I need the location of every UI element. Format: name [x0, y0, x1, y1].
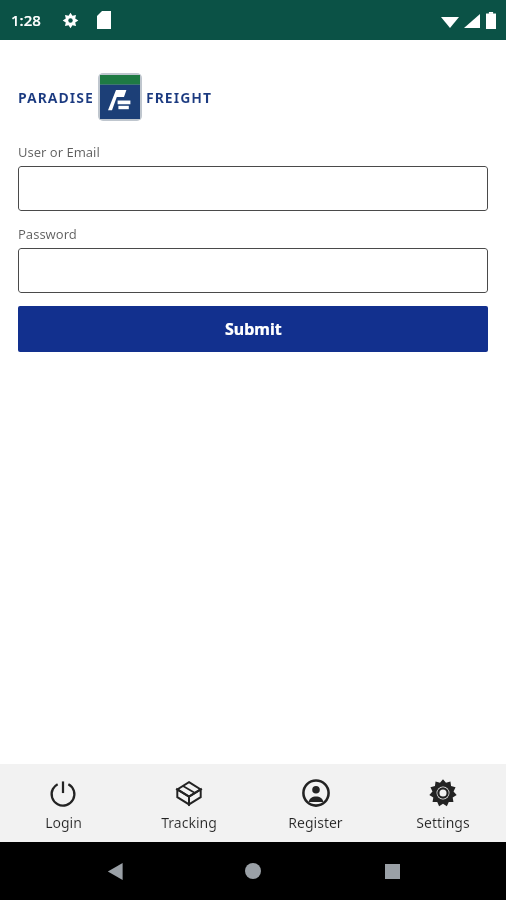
staticText: Settings [416, 813, 470, 832]
button[interactable]: Home [229, 847, 277, 895]
staticText: Register [288, 813, 343, 832]
staticText: 1:28 [11, 10, 41, 30]
staticText: Tracking [161, 813, 217, 832]
button[interactable]: Submit [18, 306, 488, 352]
staticText: Login [45, 813, 82, 832]
staticText: FREIGHT [146, 88, 213, 107]
button[interactable] [18, 248, 488, 293]
staticText: Password [18, 225, 77, 243]
button[interactable]: Settings [379, 764, 506, 842]
staticText: Submit [225, 318, 282, 340]
button[interactable]: Register [252, 764, 379, 842]
button[interactable]: Login [0, 764, 126, 842]
button[interactable]: Tracking [126, 764, 252, 842]
button[interactable]: Recent apps [368, 847, 416, 895]
button[interactable]: Back [91, 847, 139, 895]
staticText: User or Email [18, 143, 100, 161]
button[interactable] [18, 166, 488, 211]
staticText: PARADISE [18, 88, 94, 107]
